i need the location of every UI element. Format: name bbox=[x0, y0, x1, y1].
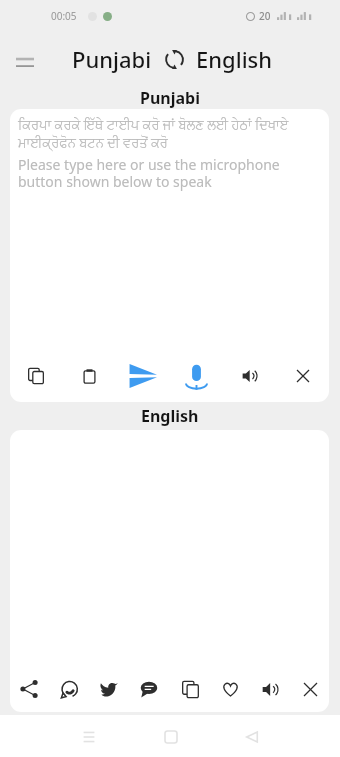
button[interactable]: Speak bbox=[256, 675, 284, 703]
button[interactable]: Copy bbox=[176, 675, 204, 703]
staticText: Punjabi bbox=[140, 87, 200, 109]
staticText: English bbox=[196, 44, 273, 74]
staticText: 00:05 bbox=[51, 9, 77, 23]
button[interactable]: Message bbox=[135, 675, 163, 703]
button[interactable]: Translate bbox=[129, 362, 157, 390]
button[interactable]: Twitter bbox=[95, 675, 123, 703]
button[interactable]: Speak bbox=[236, 362, 264, 390]
button[interactable]: Copy bbox=[22, 362, 50, 390]
button[interactable]: Share bbox=[15, 675, 43, 703]
button[interactable]: English bbox=[196, 44, 273, 74]
staticText: Punjabi bbox=[72, 44, 152, 74]
button[interactable]: Microphone bbox=[182, 362, 210, 390]
button[interactable]: Punjabi bbox=[72, 44, 152, 74]
button[interactable]: Back bbox=[237, 722, 266, 751]
button[interactable]: Paste bbox=[75, 362, 103, 390]
button[interactable]: Swap languages bbox=[163, 48, 185, 70]
button[interactable]: Recents bbox=[74, 722, 103, 751]
button[interactable]: WhatsApp bbox=[55, 675, 83, 703]
staticText: ਕਿਰਪਾ ਕਰਕੇ ਇੱਥੇ ਟਾਈਪ ਕਰੋ ਜਾਂ ਬੋਲਣ ਲਈ ਹੇਠ… bbox=[18, 115, 321, 151]
staticText: Please type here or use the microphone b… bbox=[18, 155, 321, 191]
button[interactable]: Home bbox=[156, 722, 185, 751]
button[interactable]: Clear bbox=[289, 362, 317, 390]
staticText: 20 bbox=[259, 9, 271, 23]
staticText: English bbox=[141, 405, 199, 427]
button[interactable]: Menu bbox=[9, 47, 41, 79]
button[interactable]: Favorite bbox=[216, 675, 244, 703]
button[interactable]: Clear bbox=[296, 675, 324, 703]
